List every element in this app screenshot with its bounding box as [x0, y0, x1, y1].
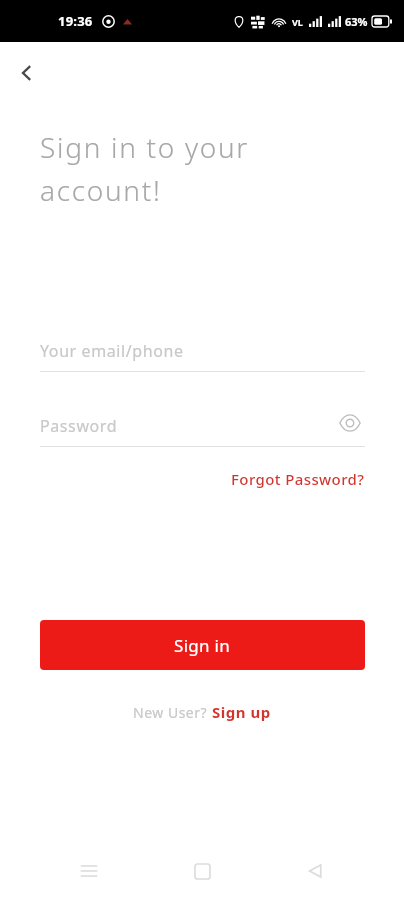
button[interactable]: Show password: [335, 408, 365, 438]
staticText: VL: [292, 16, 303, 28]
staticText: Forgot Password?: [231, 469, 365, 489]
button[interactable]: Your email/phone: [40, 330, 365, 372]
button[interactable]: Sign up: [212, 702, 271, 722]
button[interactable]: Recents: [65, 847, 113, 895]
button[interactable]: Back: [5, 51, 49, 95]
button[interactable]: Home: [178, 847, 226, 895]
staticText: Password: [40, 415, 118, 437]
button[interactable]: Forgot Password?: [40, 464, 365, 494]
button[interactable]: Sign in: [40, 620, 365, 670]
staticText: account!: [40, 171, 162, 209]
button[interactable]: Password: [40, 405, 365, 447]
staticText: Sign in: [174, 634, 231, 657]
staticText: 63%: [345, 14, 368, 29]
staticText: Sign in to your: [40, 128, 250, 166]
staticText: New User?: [133, 703, 212, 722]
button[interactable]: Back: [291, 847, 339, 895]
staticText: Sign up: [212, 702, 271, 722]
staticText: Your email/phone: [40, 340, 184, 362]
staticText: 19:36: [58, 12, 93, 30]
